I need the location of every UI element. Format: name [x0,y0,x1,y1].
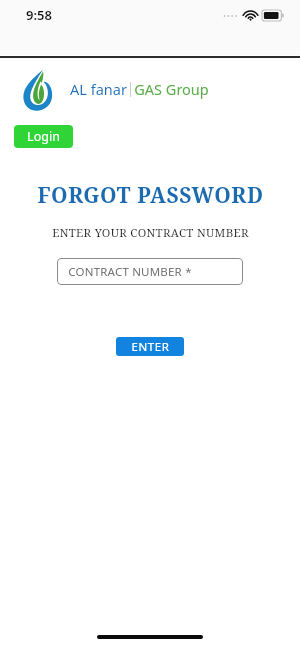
staticText: GAS Group [134,79,209,99]
other: AL fanar GAS Group logo [22,67,56,111]
button[interactable]: Login [14,125,73,148]
staticText: ENTER YOUR CONTRACT NUMBER [52,225,249,241]
staticText: FORGOT PASSWORD [37,181,264,210]
staticText: 9:58 [26,6,52,24]
staticText: CONTRACT NUMBER * [68,264,192,280]
staticText: AL fanar [70,79,127,99]
button[interactable]: CONTRACT NUMBER * [57,258,243,285]
staticText: ENTER [131,339,170,355]
button[interactable]: ENTER [116,337,184,356]
staticText: Login [27,128,60,145]
